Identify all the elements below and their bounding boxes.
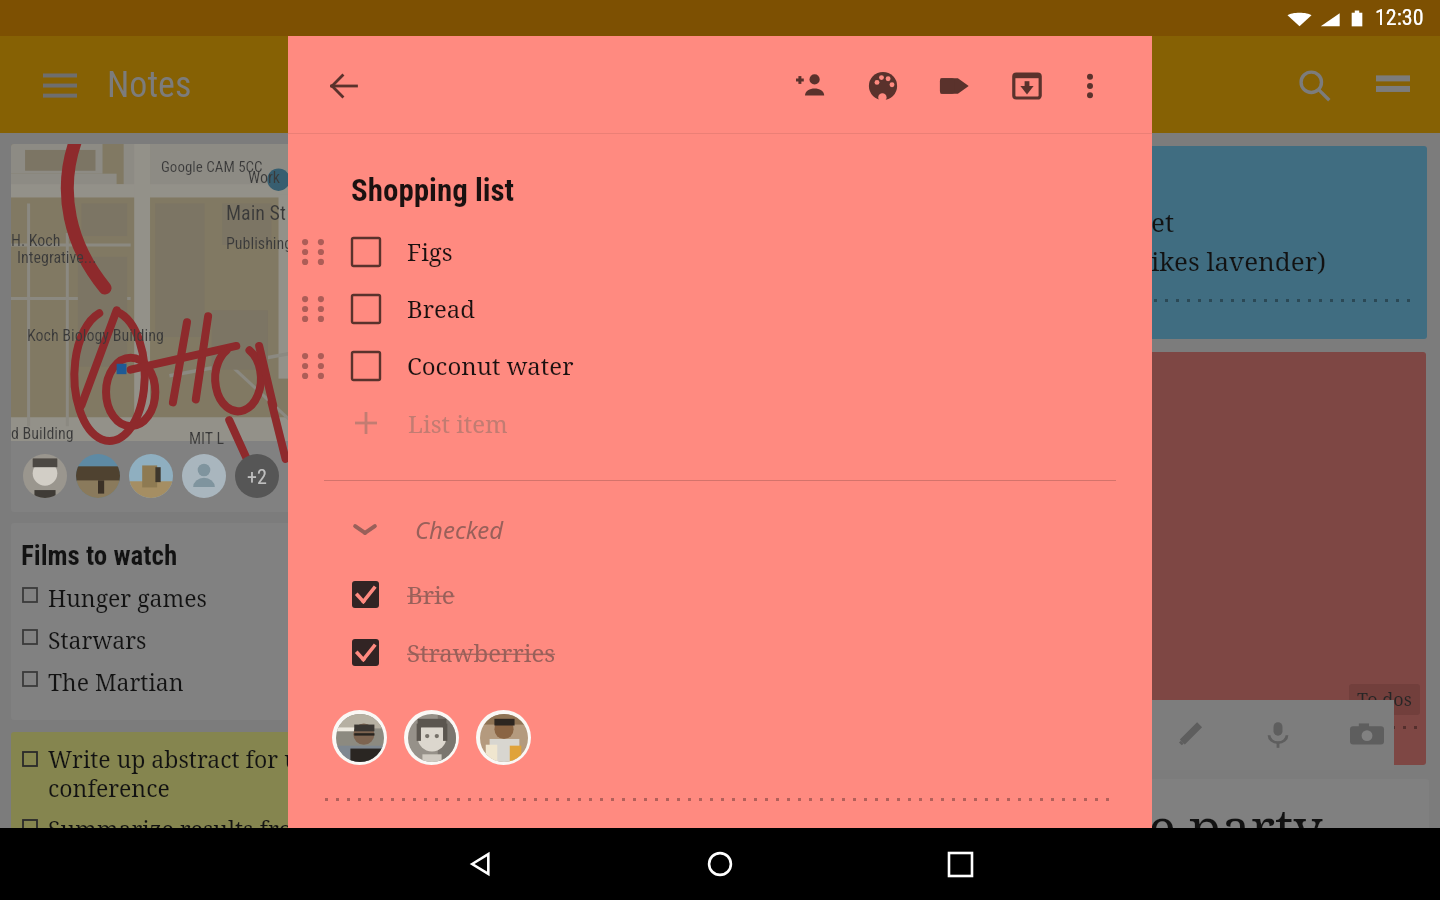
staticText: MIT L bbox=[189, 429, 225, 448]
staticText: Brie bbox=[407, 578, 455, 611]
button[interactable]: Add collaborator bbox=[779, 54, 843, 118]
button[interactable]: List item bbox=[288, 394, 1152, 452]
button[interactable]: Search bbox=[1281, 52, 1347, 118]
staticText: Integrative... bbox=[17, 248, 97, 267]
button[interactable]: Home bbox=[672, 828, 768, 900]
button[interactable]: Checked bbox=[288, 502, 1152, 556]
staticText: The Martian bbox=[48, 666, 184, 697]
staticText: e party bbox=[1148, 791, 1323, 840]
button[interactable]: More options bbox=[1058, 54, 1122, 118]
staticText: d Building bbox=[11, 424, 74, 443]
button[interactable]: Archive bbox=[995, 54, 1059, 118]
staticText: Summarize results from bbox=[48, 813, 314, 842]
staticText: List item bbox=[408, 407, 508, 440]
staticText: Figs bbox=[407, 235, 453, 268]
button[interactable]: Back bbox=[432, 828, 528, 900]
staticText: Work bbox=[248, 168, 281, 187]
button[interactable]: Back bbox=[312, 54, 376, 118]
staticText: Strawberries bbox=[407, 636, 556, 669]
staticText: Koch Biology Building bbox=[27, 326, 164, 345]
button[interactable]: Figs bbox=[288, 223, 1152, 280]
staticText: Bread bbox=[407, 292, 476, 325]
button[interactable]: Switch to list view bbox=[1360, 52, 1426, 118]
button[interactable]: Open navigation drawer bbox=[27, 52, 93, 118]
button[interactable]: Strawberries bbox=[288, 624, 1152, 681]
staticText: Publishing Se bbox=[226, 234, 312, 253]
staticText: conference bbox=[48, 772, 170, 803]
button[interactable]: Coconut water bbox=[288, 337, 1152, 394]
staticText: Main St bbox=[226, 201, 286, 224]
staticText: Starwars bbox=[48, 624, 147, 655]
staticText: Checked bbox=[415, 513, 504, 546]
staticText: Films to watch bbox=[21, 540, 178, 572]
button[interactable]: Brie bbox=[288, 566, 1152, 623]
staticText: ikes lavender) bbox=[1151, 243, 1326, 278]
staticText: To dos bbox=[1357, 687, 1412, 712]
staticText: Hunger games bbox=[48, 582, 207, 613]
staticText: +2 bbox=[247, 465, 267, 488]
staticText: Notes bbox=[107, 64, 192, 106]
staticText: Coconut water bbox=[407, 349, 574, 382]
staticText: Shopping list bbox=[351, 172, 515, 208]
staticText: Google CAM 5CC bbox=[161, 158, 263, 176]
button[interactable]: Bread bbox=[288, 280, 1152, 337]
staticText: H. Koch bbox=[11, 231, 61, 250]
staticText: Write up abstract for upcoming bbox=[48, 743, 363, 774]
button[interactable]: Label bbox=[922, 54, 986, 118]
staticText: 12:30 bbox=[1375, 5, 1424, 31]
staticText: et bbox=[1151, 204, 1175, 239]
button[interactable]: Recent apps bbox=[912, 828, 1008, 900]
button[interactable]: Change color bbox=[851, 54, 915, 118]
